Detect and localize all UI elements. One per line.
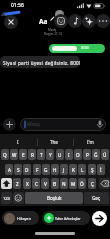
button[interactable]: Boşluk [25,192,83,204]
button[interactable] [96,14,110,28]
button[interactable] [13,192,24,204]
button[interactable]: M [69,178,77,189]
staticText: X [26,181,29,187]
button[interactable]: L [78,164,86,175]
staticText: Siyasi parti üyesi değilsiniz. 800! [3,60,81,66]
button[interactable]: Ç [88,178,96,189]
button[interactable]: A [5,164,13,175]
button[interactable]: Ü [101,149,109,160]
button[interactable]: J [60,164,68,175]
button[interactable]: Hikayen [2,211,39,225]
staticText: 123 [3,196,10,201]
button[interactable]: G [42,164,50,175]
staticText: Ü [103,152,107,158]
staticText: R [31,152,34,158]
button[interactable] [1,178,12,189]
button[interactable]: Ğ [92,149,100,160]
staticText: Ö [80,181,84,187]
staticText: Mesaj [27,121,40,127]
button[interactable]: Z [13,178,21,189]
button[interactable]: B [51,178,59,189]
button[interactable]: P [83,149,91,160]
staticText: Ğ [94,152,98,158]
staticText: T [40,152,43,158]
staticText: I'm [87,139,94,145]
staticText: C [35,181,38,187]
staticText: I [68,152,70,158]
staticText: Hikayen [17,216,31,221]
button[interactable]: I [65,149,73,160]
button[interactable]: Yakın Arkadaşlar [42,211,90,225]
staticText: W [12,152,17,158]
staticText: Ş [91,167,94,173]
staticText: U [58,152,62,158]
button[interactable]: D [23,164,31,175]
staticText: G [44,167,48,173]
button[interactable] [54,14,68,28]
staticText: Bugün 21:13 [44,32,62,36]
button[interactable]: Q [1,149,9,160]
button[interactable]: H [51,164,59,175]
button[interactable]: V [41,178,49,189]
staticText: M [71,181,76,187]
button[interactable]: C [32,178,40,189]
button[interactable]: Ş [88,164,96,175]
staticText: Boşluk [47,195,62,201]
staticText: S [17,167,20,173]
button[interactable]: Geç [84,192,109,204]
staticText: J [63,167,65,173]
button[interactable]: F [33,164,41,175]
staticText: H [53,167,57,173]
staticText: Mesaj [48,28,57,32]
button[interactable]: Mesaj [20,118,106,131]
staticText: V [44,181,47,187]
button[interactable]: X [23,178,31,189]
button[interactable] [92,211,107,226]
staticText: Ç [91,181,94,187]
button[interactable]: U [56,149,64,160]
staticText: Yakın Arkadaşlar [55,216,81,220]
button[interactable]: R [28,149,36,160]
staticText: I [17,139,19,145]
staticText: Aa [39,17,48,26]
staticText: Q [3,152,7,158]
staticText: A [8,167,11,173]
button[interactable] [4,15,18,29]
staticText: Z [16,181,19,187]
button[interactable]: O [74,149,82,160]
staticText: K [72,167,75,173]
staticText: Y [49,152,52,158]
staticText: N [62,181,66,187]
button[interactable] [3,118,16,131]
staticText: 01:56 [11,2,24,9]
button[interactable] [68,14,82,28]
button[interactable]: Ö [78,178,86,189]
staticText: P [86,152,89,158]
staticText: The [50,139,58,145]
staticText: L [81,167,84,173]
staticText: 800! [81,45,90,51]
button[interactable]: S [14,164,22,175]
button[interactable]: T [37,149,45,160]
button[interactable]: K [69,164,77,175]
staticText: E [22,152,25,158]
button[interactable] [82,14,96,28]
staticText: Geç [92,195,101,201]
staticText: İ [100,167,102,173]
button[interactable]: N [60,178,68,189]
button[interactable]: W [10,149,18,160]
staticText: B [53,181,57,187]
staticText: F [36,167,39,173]
button[interactable]: 123 [1,192,12,204]
button[interactable]: Y [46,149,54,160]
button[interactable] [99,178,110,189]
staticText: D [25,167,29,173]
staticText: O [76,152,80,158]
button[interactable]: İ [97,164,105,175]
button[interactable]: E [19,149,27,160]
button[interactable]: Aa [38,16,54,28]
